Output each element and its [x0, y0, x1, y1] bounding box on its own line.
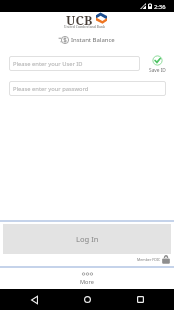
staticText: Member FDIC	[137, 257, 161, 262]
staticText: Log In	[76, 234, 99, 244]
button[interactable]: Instant Balance	[59, 35, 115, 45]
staticText: United Cumberland Bank	[64, 24, 106, 29]
button[interactable]: Please enter your User ID	[9, 56, 140, 71]
button[interactable]: Back	[16, 289, 52, 310]
staticText: Please enter your User ID	[13, 60, 83, 68]
staticText: Instant Balance	[71, 36, 115, 44]
staticText: Save ID	[149, 67, 166, 74]
button[interactable]: Recent apps	[122, 289, 158, 310]
button[interactable]: Home	[69, 289, 105, 310]
staticText: UCB	[66, 12, 93, 29]
button[interactable]: More	[0, 269, 174, 289]
staticText: More	[80, 278, 94, 286]
button[interactable]: Log In	[3, 224, 171, 254]
staticText: 2:36	[154, 3, 166, 11]
button[interactable]: Save ID	[147, 55, 168, 74]
other: Secure	[162, 255, 170, 264]
button[interactable]: Please enter your password	[9, 81, 166, 96]
staticText: Please enter your password	[13, 85, 89, 93]
